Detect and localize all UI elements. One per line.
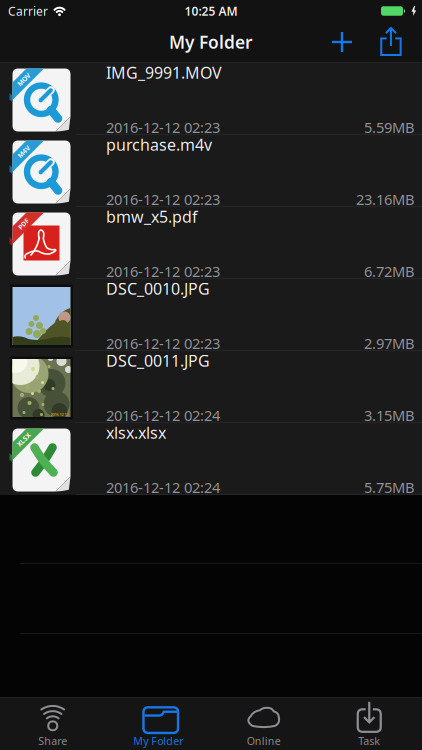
staticText: M4V xyxy=(17,147,31,156)
button[interactable]: 2016 12 12 xyxy=(0,351,422,423)
staticText: 10:25 AM xyxy=(184,3,237,19)
button[interactable]: Share xyxy=(372,21,410,61)
staticText: 6.72MB xyxy=(364,261,415,281)
button[interactable]: Share xyxy=(0,698,105,750)
button[interactable]: My Folder xyxy=(105,698,211,750)
button[interactable]: XLSX xyxy=(0,423,422,495)
staticText: xlsx.xlsx xyxy=(106,422,166,443)
staticText: 2016 12 12 xyxy=(50,412,68,417)
button[interactable]: Task xyxy=(316,698,422,750)
staticText: Share xyxy=(38,734,67,748)
button[interactable]: Add xyxy=(321,22,363,62)
staticText: DSC_0010.JPG xyxy=(106,278,210,299)
staticText: My Folder xyxy=(169,31,253,54)
staticText: My Folder xyxy=(133,734,183,748)
staticText: 2016-12-12 02:24 xyxy=(106,477,220,497)
staticText: MOV xyxy=(16,75,31,84)
staticText: 2016-12-12 02:23 xyxy=(106,189,220,209)
staticText: bmw_x5.pdf xyxy=(106,206,198,227)
staticText: DSC_0011.JPG xyxy=(106,350,210,371)
staticText: PDF xyxy=(17,219,30,228)
staticText: 23.16MB xyxy=(356,189,415,209)
staticText: 5.75MB xyxy=(364,477,415,497)
staticText: IMG_9991.MOV xyxy=(106,62,222,83)
button[interactable]: Online xyxy=(211,698,316,750)
staticText: XLSX xyxy=(16,435,32,444)
staticText: Task xyxy=(358,734,380,748)
staticText: 2016-12-12 02:23 xyxy=(106,117,220,137)
staticText: 2016-12-12 02:23 xyxy=(106,333,220,353)
staticText: 2.97MB xyxy=(364,333,415,353)
button[interactable]: DSC_0010.JPG xyxy=(0,279,422,351)
staticText: Carrier xyxy=(8,3,48,19)
staticText: 2016-12-12 02:23 xyxy=(106,261,220,281)
staticText: purchase.m4v xyxy=(106,134,212,155)
staticText: 5.59MB xyxy=(364,117,415,137)
button[interactable]: M4V xyxy=(0,135,422,207)
staticText: Online xyxy=(247,734,281,748)
button[interactable]: PDF xyxy=(0,207,422,279)
staticText: 2016-12-12 02:24 xyxy=(106,405,220,425)
button[interactable]: MOV xyxy=(0,63,422,135)
staticText: 3.15MB xyxy=(364,405,415,425)
